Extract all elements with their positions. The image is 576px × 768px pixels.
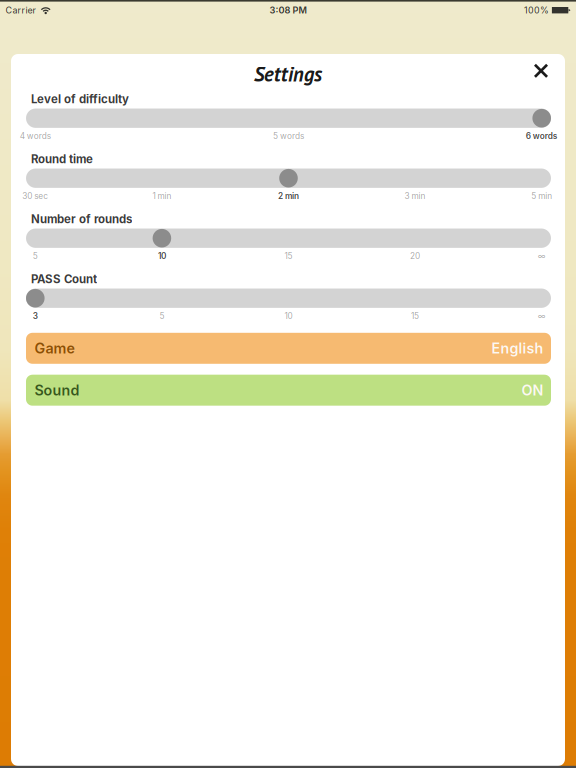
staticText: 5 words [273,131,304,141]
button[interactable]: Round time [0,0,576,56]
staticText: English [491,340,543,357]
staticText: 10 [158,251,166,261]
staticText: 2 min [278,191,299,201]
button[interactable]: Game [26,333,551,364]
staticText: Carrier [5,5,35,16]
staticText: 3 [33,311,38,321]
staticText: ∞ [538,251,546,261]
staticText: 15 [284,251,292,261]
staticText: PASS Count [31,272,97,286]
button[interactable]: PASS Count [0,0,576,56]
staticText: 5 min [531,191,552,201]
staticText: Round time [31,152,93,166]
staticText: 5 [33,251,38,261]
staticText: 5 [159,311,164,321]
staticText: 4 words [20,131,51,141]
button[interactable]: Level of difficulty [0,0,576,56]
staticText: 3:08 PM [269,5,306,16]
button[interactable]: Sound [26,375,551,406]
staticText: 10 [284,311,292,321]
staticText: 15 [411,311,419,321]
staticText: Sound [34,382,79,399]
staticText: Number of rounds [31,212,132,226]
staticText: ON [521,382,543,399]
staticText: 100% [524,5,549,16]
staticText: 6 words [526,131,558,141]
staticText: 1 min [152,191,171,201]
button[interactable]: Number of rounds [0,0,576,56]
staticText: Game [34,340,74,357]
staticText: Level of difficulty [31,92,129,106]
staticText: 20 [410,251,420,261]
staticText: 3 min [405,191,426,201]
staticText: 30 sec [22,191,48,201]
button[interactable]: Close [523,53,559,89]
staticText: Settings [254,61,322,87]
staticText: ∞ [538,311,546,321]
